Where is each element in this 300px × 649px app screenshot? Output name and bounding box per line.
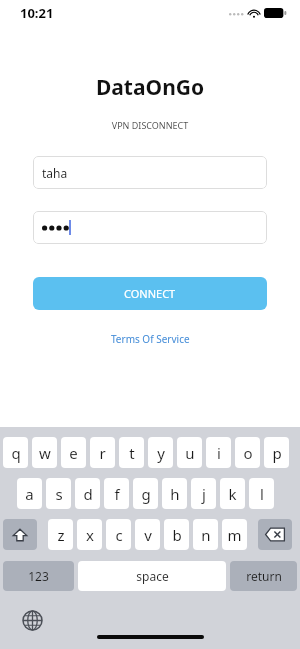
button[interactable]: h [162,478,187,509]
button[interactable]: n [193,519,218,550]
staticText: f [114,484,120,504]
button[interactable]: k [220,478,245,509]
staticText: u [185,443,195,463]
staticText: VPN DISCONNECT [0,119,300,131]
button[interactable]: Terms Of Service [0,332,300,346]
button[interactable]: u [177,437,202,468]
staticText: w [39,443,51,463]
button[interactable]: return [230,561,297,591]
button[interactable]: t [119,437,144,468]
button[interactable]: s [46,478,71,509]
staticText: DataOnGo [0,73,300,102]
button[interactable]: taha [33,156,267,189]
button[interactable]: 123 [3,561,74,591]
staticText: space [136,568,169,584]
button[interactable]: y [148,437,173,468]
button[interactable]: f [104,478,129,509]
staticText: i [217,443,221,463]
staticText: Terms Of Service [111,332,190,346]
button[interactable]: l [249,478,274,509]
button[interactable]: r [90,437,115,468]
staticText: d [83,484,93,504]
staticText: e [69,443,78,463]
button[interactable]: Shift [3,519,37,550]
staticText: v [144,525,152,545]
button[interactable]: e [61,437,86,468]
button[interactable]: w [32,437,57,468]
button[interactable]: b [164,519,189,550]
staticText: r [99,443,106,463]
staticText: 10:21 [20,4,54,22]
staticText: l [260,484,264,504]
staticText: p [272,443,282,463]
staticText: x [86,525,94,545]
staticText: CONNECT [124,286,176,301]
staticText: o [243,443,253,463]
button[interactable]: a [17,478,42,509]
staticText: s [55,484,63,504]
staticText: t [129,443,135,463]
staticText: a [25,484,34,504]
staticText: y [157,443,165,463]
button[interactable]: Backspace [258,519,292,550]
button[interactable]: v [135,519,160,550]
staticText: c [115,525,123,545]
button[interactable]: space [78,561,226,591]
button[interactable] [33,211,267,244]
button[interactable]: z [48,519,73,550]
staticText: 123 [28,568,49,584]
staticText: q [11,443,21,463]
button[interactable]: i [206,437,231,468]
staticText: return [246,568,282,584]
staticText: b [172,525,182,545]
button[interactable]: o [235,437,260,468]
staticText: z [57,525,65,545]
button[interactable]: CONNECT [33,277,267,310]
button[interactable]: q [3,437,28,468]
staticText: h [170,484,180,504]
staticText: g [141,484,151,504]
button[interactable]: m [222,519,247,550]
staticText: j [202,484,206,504]
button[interactable]: d [75,478,100,509]
button[interactable]: j [191,478,216,509]
button[interactable]: x [77,519,102,550]
button[interactable]: Change keyboard language [20,608,45,633]
staticText: m [227,525,242,545]
staticText: k [228,484,237,504]
staticText: taha [42,165,68,181]
button[interactable]: c [106,519,131,550]
button[interactable]: p [264,437,289,468]
button[interactable]: g [133,478,158,509]
staticText: n [201,525,211,545]
